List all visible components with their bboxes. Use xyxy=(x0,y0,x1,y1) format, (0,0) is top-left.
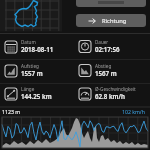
staticText: Ø-Geschwindigkeit xyxy=(95,86,136,92)
staticText: Richtung xyxy=(102,17,127,25)
staticText: 2018-08-11 xyxy=(21,45,54,53)
staticText: 1123 m xyxy=(2,108,21,115)
staticText: 102 km/h xyxy=(122,108,146,115)
staticText: 144.25 km xyxy=(21,92,52,100)
button[interactable]: Richtung xyxy=(76,14,146,27)
staticText: 1557 m xyxy=(21,69,43,77)
staticText: 02:17:56 xyxy=(95,45,120,53)
staticText: Abstieg xyxy=(95,63,112,69)
staticText: Aufstieg xyxy=(21,63,39,69)
staticText: Dauer xyxy=(95,39,109,45)
staticText: Länge xyxy=(21,86,35,92)
staticText: 1567 m xyxy=(95,69,117,77)
button[interactable] xyxy=(76,0,146,7)
staticText: Datum xyxy=(21,39,36,45)
staticText: 62.8 km/h xyxy=(95,92,125,100)
